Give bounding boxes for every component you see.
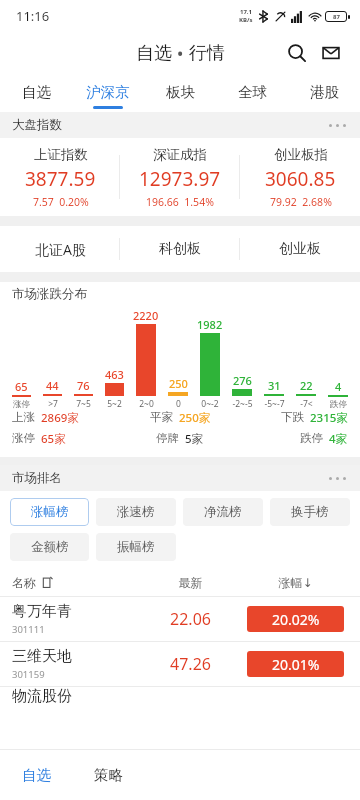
staticText: 涨停	[12, 431, 35, 445]
button[interactable]: More options	[327, 477, 348, 480]
staticText: 平家	[150, 410, 173, 424]
staticText: 3060.85	[265, 166, 336, 192]
staticText: 65家	[41, 431, 66, 447]
staticText: 涨幅榜	[31, 504, 69, 520]
staticText: •	[172, 41, 189, 66]
staticText: 301111	[12, 623, 45, 636]
staticText: 11:16	[16, 7, 50, 25]
button[interactable]: 净流榜	[183, 498, 263, 526]
staticText: 跌停	[330, 399, 347, 410]
staticText: 12973.97	[139, 166, 221, 192]
staticText: 上证指数	[34, 146, 88, 163]
staticText: 22.06	[138, 608, 243, 630]
staticText: 涨幅↓	[243, 575, 348, 590]
staticText: 301159	[12, 668, 45, 681]
staticText: 换手榜	[291, 504, 329, 520]
staticText: 76	[77, 378, 90, 393]
staticText: 65	[15, 379, 28, 394]
button[interactable]: Messages	[314, 36, 348, 70]
button[interactable]: 三维天地	[0, 642, 360, 687]
staticText: 大盘指数	[12, 117, 62, 133]
staticText: 17.1	[240, 8, 252, 16]
staticText: 振幅榜	[117, 539, 155, 555]
staticText: 名称	[12, 575, 36, 590]
staticText: 20.02%	[272, 610, 320, 629]
button[interactable]: 北证A股	[0, 226, 120, 272]
staticText: 自选	[22, 83, 51, 101]
button[interactable]: 全球	[216, 74, 288, 112]
staticText: 2869家	[41, 410, 79, 426]
staticText: 250	[169, 376, 188, 391]
button[interactable]: 自选	[0, 74, 72, 112]
staticText: 276	[233, 373, 252, 388]
button[interactable]: 金额榜	[10, 533, 89, 561]
staticText: 2220	[133, 308, 159, 323]
button[interactable]: 沪深京	[72, 74, 144, 112]
staticText: 44	[46, 378, 59, 393]
staticText: 三维天地	[12, 647, 72, 666]
staticText: 净流榜	[204, 504, 242, 520]
button[interactable]: 粤万年青	[0, 597, 360, 642]
staticText: 463	[105, 367, 124, 382]
button[interactable]: More options	[327, 124, 348, 127]
staticText: 策略	[94, 766, 123, 784]
staticText: >7	[48, 398, 58, 410]
staticText: 87	[333, 13, 340, 21]
staticText: 北证A股	[35, 240, 86, 259]
staticText: 涨速榜	[117, 504, 155, 520]
staticText: 粤万年青	[12, 602, 72, 621]
button[interactable]: 深证成指	[120, 138, 240, 216]
staticText: 板块	[166, 83, 195, 101]
staticText: 沪深京	[86, 83, 130, 101]
staticText: 停牌	[156, 431, 179, 445]
staticText: -7<	[300, 398, 313, 410]
staticText: 22	[300, 378, 313, 393]
button[interactable]: 自选	[0, 750, 72, 800]
staticText: 创业板指	[274, 146, 328, 163]
staticText: 2~0	[139, 398, 154, 410]
button[interactable]: 策略	[72, 750, 144, 800]
staticText: 下跌	[281, 410, 304, 424]
button[interactable]: 涨幅榜	[10, 498, 89, 526]
staticText: 79.92 2.68%	[270, 195, 332, 209]
staticText: 金额榜	[31, 539, 69, 555]
button[interactable]: 换手榜	[270, 498, 350, 526]
button[interactable]: 创业板	[240, 226, 360, 272]
button[interactable]: 物流股份	[12, 687, 348, 703]
staticText: 最新	[138, 575, 243, 590]
staticText: 自选	[22, 766, 51, 784]
button[interactable]: 科创板	[120, 226, 240, 272]
staticText: 47.26	[138, 653, 243, 675]
staticText: 涨停	[13, 399, 30, 410]
staticText: 市场排名	[12, 470, 62, 486]
staticText: 0	[176, 398, 181, 410]
staticText: 1982	[197, 317, 223, 332]
staticText: 创业板	[279, 240, 321, 258]
staticText: 2315家	[310, 410, 348, 426]
staticText: 31	[268, 378, 281, 393]
staticText: 跌停	[300, 431, 323, 445]
staticText: -5~-7	[264, 398, 285, 410]
button[interactable]: 振幅榜	[96, 533, 176, 561]
button[interactable]: Search	[280, 36, 314, 70]
staticText: 深证成指	[153, 146, 207, 163]
staticText: 港股	[310, 83, 339, 101]
button[interactable]: 创业板指	[240, 138, 360, 216]
staticText: 7.57 0.20%	[33, 195, 89, 209]
staticText: 上涨	[12, 410, 35, 424]
staticText: 4	[335, 379, 342, 394]
staticText: 市场涨跌分布	[12, 286, 87, 302]
staticText: 自选	[136, 42, 172, 65]
staticText: -2~-5	[232, 398, 253, 410]
button[interactable]: 上证指数	[0, 138, 120, 216]
button[interactable]: 港股	[288, 74, 360, 112]
staticText: 0~-2	[201, 398, 219, 410]
staticText: 全球	[238, 83, 267, 101]
staticText: KB/s	[239, 16, 253, 24]
staticText: 20.01%	[272, 655, 320, 674]
button[interactable]: 板块	[144, 74, 216, 112]
staticText: 科创板	[159, 240, 201, 258]
staticText: 196.66 1.54%	[146, 195, 214, 209]
staticText: 5家	[185, 431, 204, 447]
button[interactable]: 涨速榜	[96, 498, 176, 526]
